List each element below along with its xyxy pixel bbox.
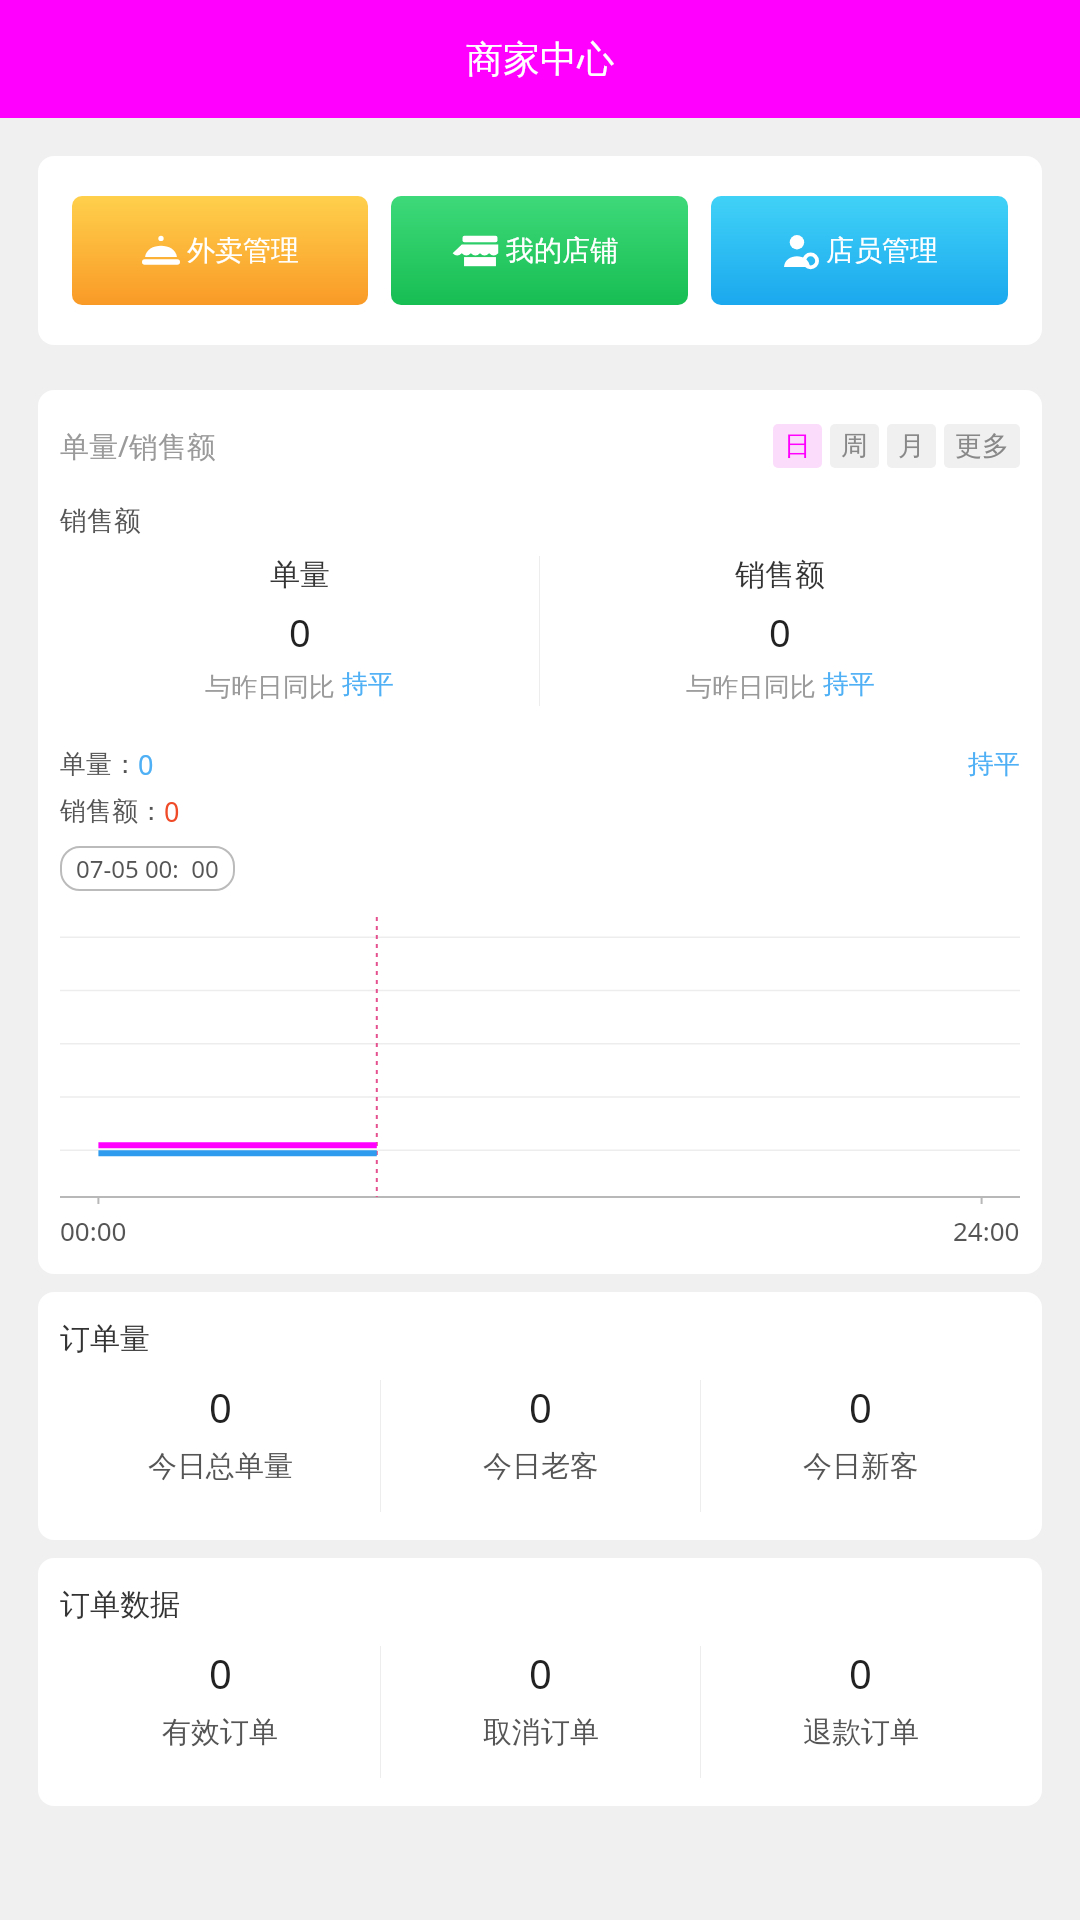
button[interactable]: 0 xyxy=(381,1380,700,1485)
button[interactable]: 我的店铺 xyxy=(391,196,688,305)
staticText: 0 xyxy=(849,1380,872,1434)
staticText: 退款订单 xyxy=(803,1714,919,1751)
staticText: 0 xyxy=(849,1646,872,1700)
button[interactable]: 0 xyxy=(60,1380,380,1485)
button[interactable]: 0 xyxy=(701,1646,1020,1751)
staticText: 单量： xyxy=(60,748,138,781)
staticText: 0 xyxy=(529,1380,552,1434)
staticText: 单量/销售额 xyxy=(60,426,216,466)
staticText: 订单数据 xyxy=(60,1586,180,1624)
staticText: 0 xyxy=(138,746,154,783)
button[interactable]: 周 xyxy=(830,424,879,468)
button[interactable]: 日 xyxy=(773,424,822,468)
staticText: 外卖管理 xyxy=(187,233,299,268)
staticText: 我的店铺 xyxy=(506,233,618,268)
staticText: 与昨日同比 xyxy=(686,668,823,704)
staticText: 周 xyxy=(841,429,868,463)
staticText: 销售额： xyxy=(60,795,164,828)
staticText: 取消订单 xyxy=(483,1714,599,1751)
button[interactable]: 店员管理 xyxy=(711,196,1008,305)
staticText: 商家中心 xyxy=(466,36,614,83)
staticText: 订单量 xyxy=(60,1320,150,1358)
staticText: 今日总单量 xyxy=(148,1448,293,1485)
staticText: 今日老客 xyxy=(483,1448,599,1485)
staticText: 有效订单 xyxy=(162,1714,278,1751)
staticText: 24:00 xyxy=(953,1213,1020,1248)
button[interactable]: 外卖管理 xyxy=(72,196,368,305)
staticText: 00:00 xyxy=(60,1213,127,1248)
staticText: 0 xyxy=(164,793,180,830)
staticText: 0 xyxy=(209,1380,232,1434)
staticText: 更多 xyxy=(955,429,1009,463)
staticText: 持平 xyxy=(968,748,1020,781)
button[interactable]: 0 xyxy=(701,1380,1020,1485)
staticText: 月 xyxy=(898,429,925,463)
staticText: 店员管理 xyxy=(826,233,938,268)
staticText: 今日新客 xyxy=(803,1448,919,1485)
staticText: 0 xyxy=(769,606,791,658)
button[interactable]: 0 xyxy=(60,1646,380,1751)
staticText: 持平 xyxy=(342,668,394,701)
staticText: 与昨日同比 xyxy=(205,668,342,704)
staticText: 日 xyxy=(784,429,811,463)
staticText: 单量 xyxy=(270,556,330,594)
button[interactable]: 0 xyxy=(381,1646,700,1751)
button[interactable]: 月 xyxy=(887,424,936,468)
staticText: 0 xyxy=(289,606,311,658)
staticText: 持平 xyxy=(823,668,875,701)
staticText: 0 xyxy=(209,1646,232,1700)
staticText: 销售额 xyxy=(60,504,141,538)
staticText: 0 xyxy=(529,1646,552,1700)
staticText: 销售额 xyxy=(735,556,825,594)
button[interactable]: 更多 xyxy=(944,424,1020,468)
staticText: 07-05 00: 00 xyxy=(76,852,219,885)
